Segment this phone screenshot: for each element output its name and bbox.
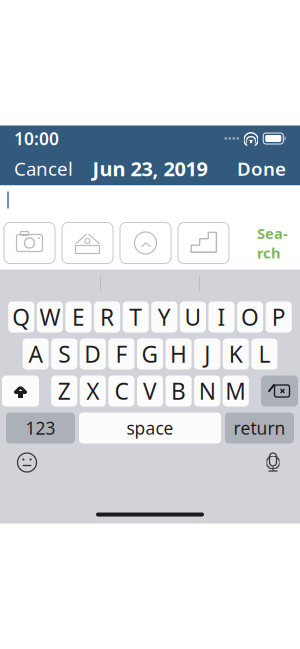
button[interactable]: Search <box>253 222 292 263</box>
staticText: Search <box>257 223 288 262</box>
staticText: Y <box>158 302 171 332</box>
staticText: return <box>233 416 285 439</box>
staticText: K <box>229 339 243 369</box>
button[interactable]: Y <box>151 301 177 332</box>
button[interactable]: L <box>251 338 277 369</box>
button[interactable]: U <box>180 301 206 332</box>
button[interactable]: B <box>166 375 192 406</box>
staticText: O <box>241 302 259 332</box>
staticText: T <box>129 302 142 332</box>
staticText: U <box>184 302 201 332</box>
staticText: R <box>100 302 114 332</box>
button[interactable]: 123 <box>6 412 75 443</box>
staticText: D <box>84 339 101 369</box>
staticText: Jun 23, 2019 <box>92 155 207 182</box>
button[interactable]: R <box>94 301 120 332</box>
staticText: J <box>204 339 210 369</box>
button[interactable]: S <box>51 338 77 369</box>
staticText: I <box>217 302 225 332</box>
button[interactable]: D <box>80 338 106 369</box>
staticText: L <box>258 339 270 369</box>
staticText: P <box>272 302 286 332</box>
staticText: M <box>225 376 246 406</box>
staticText: X <box>86 376 99 406</box>
staticText: Cancel <box>14 156 73 181</box>
button[interactable]: Dictate <box>256 447 290 477</box>
button[interactable]: E <box>65 301 91 332</box>
button[interactable]: T <box>123 301 149 332</box>
button[interactable]: K <box>223 338 249 369</box>
staticText: H <box>170 339 187 369</box>
button[interactable]: P <box>266 301 292 332</box>
button[interactable]: W <box>37 301 63 332</box>
button[interactable]: X <box>80 375 106 406</box>
button[interactable]: A <box>23 338 49 369</box>
button[interactable]: J <box>194 338 220 369</box>
button[interactable]: V <box>137 375 163 406</box>
button[interactable]: Photo <box>4 222 55 263</box>
staticText: Q <box>12 302 30 332</box>
button[interactable]: Q <box>8 301 34 332</box>
staticText: Done <box>237 156 286 181</box>
button[interactable]: Shift <box>2 375 39 406</box>
button[interactable]: Cancel <box>2 151 85 185</box>
staticText: Z <box>58 376 71 406</box>
staticText: 10:00 <box>14 127 59 150</box>
button[interactable]: return <box>225 412 294 443</box>
button[interactable]: O <box>237 301 263 332</box>
staticText: V <box>143 376 157 406</box>
button[interactable]: Delete <box>261 375 298 406</box>
button[interactable]: N <box>194 375 220 406</box>
button[interactable]: Emoji <box>10 447 44 477</box>
staticText: G <box>141 339 158 369</box>
button[interactable]: Z <box>51 375 77 406</box>
button[interactable]: M <box>223 375 249 406</box>
staticText: E <box>72 302 85 332</box>
button[interactable]: Steps <box>178 222 229 263</box>
staticText: A <box>29 339 43 369</box>
button[interactable]: C <box>108 375 134 406</box>
button[interactable]: I <box>208 301 234 332</box>
button[interactable]: F <box>108 338 134 369</box>
button[interactable]: Location <box>62 222 113 263</box>
staticText: C <box>114 376 128 406</box>
staticText: 123 <box>25 416 55 439</box>
staticText: F <box>115 339 127 369</box>
button[interactable]: Time <box>120 222 171 263</box>
button[interactable]: G <box>137 338 163 369</box>
staticText: space <box>126 416 173 439</box>
staticText: W <box>39 302 60 332</box>
button[interactable]: Done <box>225 151 298 185</box>
staticText: N <box>199 376 216 406</box>
staticText: B <box>171 376 186 406</box>
staticText: S <box>58 339 70 369</box>
button[interactable]: H <box>166 338 192 369</box>
button[interactable]: space <box>79 412 221 443</box>
